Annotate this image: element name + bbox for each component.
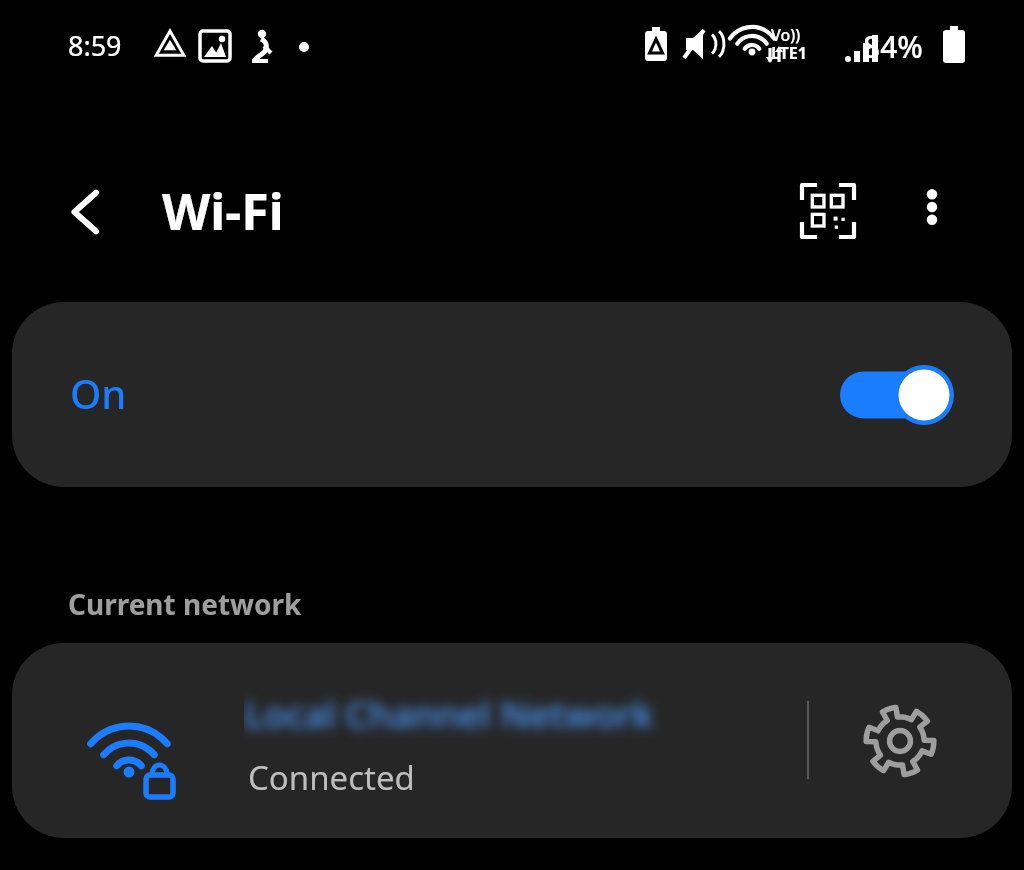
button[interactable]: On	[12, 302, 1012, 487]
staticText: On	[70, 366, 127, 420]
button[interactable]: Network settings	[850, 691, 950, 791]
staticText: 84%	[863, 26, 923, 67]
staticText: Local Channel Network	[244, 688, 654, 738]
staticText: Current network	[68, 585, 302, 623]
staticText: 8:59	[68, 27, 122, 64]
staticText: Wi-Fi	[162, 177, 284, 245]
staticText: Vo))	[771, 24, 801, 46]
button[interactable]: More options	[900, 175, 964, 239]
button[interactable]: Scan QR code	[792, 175, 864, 247]
button[interactable]: Back	[48, 172, 128, 252]
staticText: LTE1	[771, 42, 807, 64]
button[interactable]	[12, 643, 795, 838]
staticText: Connected	[248, 755, 415, 800]
